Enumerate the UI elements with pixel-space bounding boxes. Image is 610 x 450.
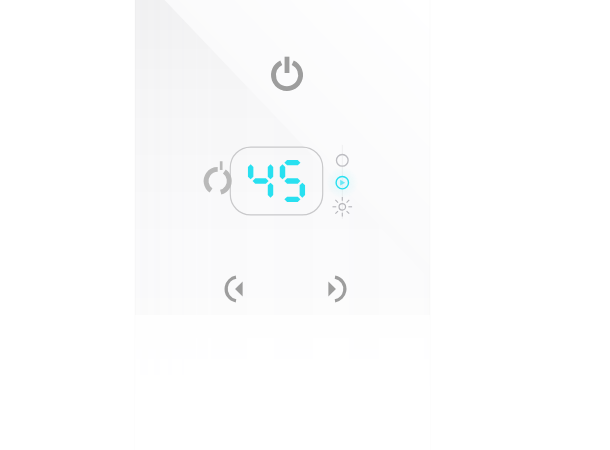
- button[interactable]: Next: [316, 270, 354, 308]
- button[interactable]: Previous: [217, 270, 255, 308]
- button[interactable]: Brightness level 45: [210, 138, 350, 224]
- button[interactable]: Power: [264, 50, 310, 96]
